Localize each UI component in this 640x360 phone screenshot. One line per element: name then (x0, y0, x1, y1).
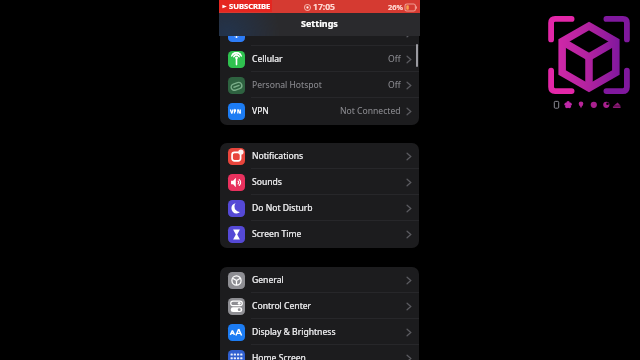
other: App logo (543, 4, 637, 116)
staticText: Cellular (252, 53, 283, 65)
staticText: Do Not Disturb (252, 202, 313, 214)
button[interactable]: Screen Time (220, 221, 419, 247)
staticText: Display & Brightness (252, 326, 336, 338)
staticText: VPN (252, 105, 269, 117)
button[interactable]: Display & Brightness (220, 319, 419, 345)
staticText: Personal Hotspot (252, 79, 322, 91)
staticText: General (252, 274, 284, 286)
button[interactable]: Cellular (220, 46, 419, 72)
staticText: Control Center (252, 300, 312, 312)
staticText: Off (388, 79, 401, 91)
staticText: 26% (388, 2, 403, 12)
button[interactable]: Control Center (220, 293, 419, 319)
button[interactable]: Personal Hotspot (220, 72, 419, 98)
button[interactable]: Home Screen (220, 345, 419, 360)
staticText: Home Screen (252, 352, 306, 360)
button[interactable]: Do Not Disturb (220, 195, 419, 221)
staticText: SUBSCRIBE (229, 1, 271, 11)
staticText: Off (388, 53, 401, 65)
button[interactable]: Notifications (220, 143, 419, 169)
button[interactable]: VPN (220, 98, 419, 124)
staticText: Wi-Fi (252, 27, 272, 39)
staticText: Sounds (252, 176, 282, 188)
staticText: Not Connected (340, 105, 401, 117)
staticText: Screen Time (252, 228, 302, 240)
button[interactable]: SUBSCRIBE (219, 0, 272, 12)
button[interactable]: Sounds (220, 169, 419, 195)
staticText: Notifications (252, 150, 304, 162)
staticText: Settings (301, 17, 338, 29)
button[interactable]: General (220, 267, 419, 293)
staticText: 17:05 (313, 1, 336, 13)
button[interactable]: Wi-Fi (220, 20, 419, 46)
staticText: Not Connected (340, 27, 401, 39)
